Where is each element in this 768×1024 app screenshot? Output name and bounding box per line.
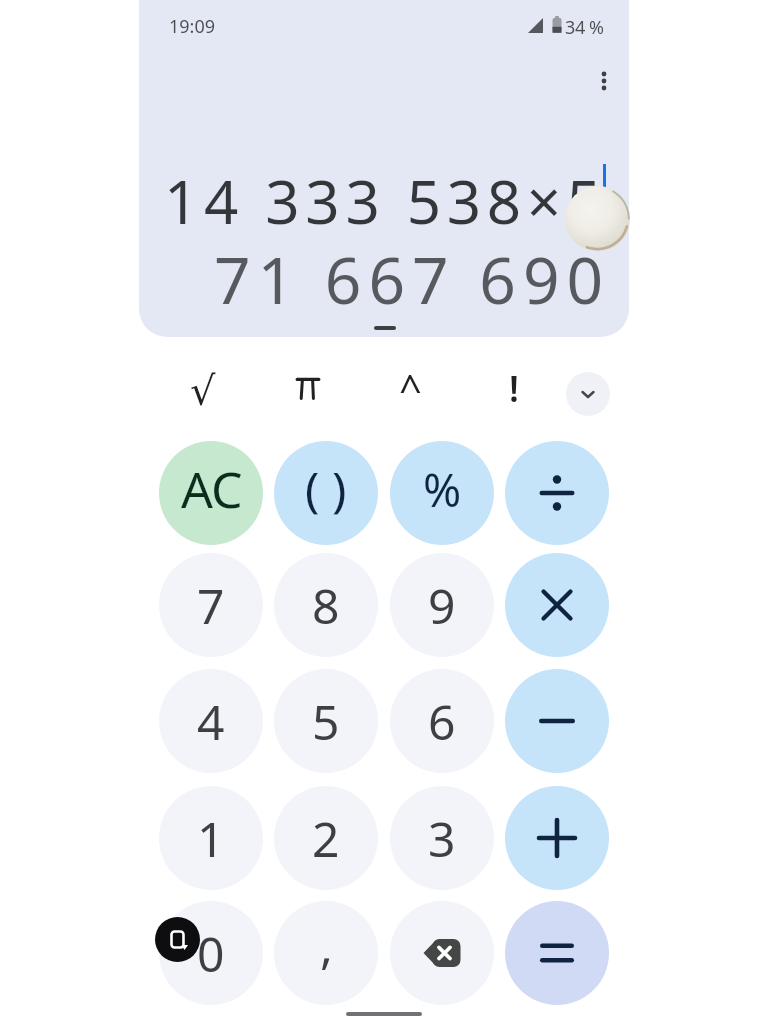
staticText: % bbox=[423, 458, 462, 521]
button[interactable]: ^ bbox=[390, 368, 430, 408]
button[interactable]: 3 bbox=[390, 786, 494, 890]
button[interactable]: 4 bbox=[159, 669, 263, 773]
staticText: 6 bbox=[428, 689, 456, 754]
button[interactable]: 0 bbox=[159, 901, 263, 1005]
button[interactable]: AC bbox=[159, 441, 263, 545]
button[interactable] bbox=[505, 786, 609, 890]
staticText: 3 bbox=[428, 806, 456, 871]
staticText: AC bbox=[181, 455, 242, 523]
button[interactable]: √ bbox=[183, 368, 223, 408]
button[interactable]: % bbox=[390, 441, 494, 545]
staticText: ^ bbox=[399, 361, 422, 401]
staticText: 7 bbox=[197, 573, 225, 638]
button[interactable]: ! bbox=[494, 368, 534, 408]
button[interactable]: 8 bbox=[274, 553, 378, 657]
staticText: 0 bbox=[197, 921, 225, 986]
button[interactable] bbox=[155, 917, 200, 962]
staticText: 2 bbox=[312, 806, 340, 871]
staticText: 19:09 bbox=[169, 14, 216, 39]
staticText: 34 % bbox=[565, 15, 604, 40]
button[interactable] bbox=[505, 901, 609, 1005]
button[interactable] bbox=[288, 368, 328, 408]
button[interactable]: 1 bbox=[159, 786, 263, 890]
button[interactable] bbox=[505, 553, 609, 657]
staticText: , bbox=[320, 913, 333, 978]
button[interactable]: 5 bbox=[274, 669, 378, 773]
button[interactable] bbox=[390, 901, 494, 1005]
staticText: ! bbox=[509, 364, 519, 404]
staticText: 4 bbox=[197, 689, 225, 754]
button[interactable]: ( ) bbox=[274, 441, 378, 545]
staticText: ( ) bbox=[305, 456, 347, 521]
button[interactable]: 2 bbox=[274, 786, 378, 890]
staticText: 5 bbox=[312, 689, 340, 754]
button[interactable]: 6 bbox=[390, 669, 494, 773]
button[interactable]: 9 bbox=[390, 553, 494, 657]
button[interactable] bbox=[592, 62, 616, 98]
button[interactable]: , bbox=[274, 901, 378, 1005]
staticText: 1 bbox=[197, 806, 225, 871]
staticText: √ bbox=[190, 368, 216, 408]
staticText: 14 333 538×5 bbox=[164, 160, 607, 242]
button[interactable] bbox=[505, 441, 609, 545]
button[interactable] bbox=[566, 372, 610, 416]
staticText: 9 bbox=[428, 573, 456, 638]
button[interactable]: 7 bbox=[159, 553, 263, 657]
button[interactable] bbox=[505, 669, 609, 773]
staticText: 71 667 690 bbox=[214, 236, 611, 323]
staticText: 8 bbox=[312, 573, 340, 638]
